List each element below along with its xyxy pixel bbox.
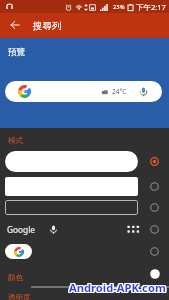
staticText: Android-APK.com [69,281,166,296]
staticText: Android-APK.com [68,281,165,296]
button[interactable]: Colour slider [25,266,169,292]
button[interactable] [0,239,169,263]
staticText: Android-APK.com [70,279,167,294]
button[interactable] [0,195,169,219]
staticText: 透明度 [8,293,31,300]
staticText: Android-APK.com [68,280,165,295]
button[interactable] [0,174,169,198]
button[interactable]: Google search [5,81,162,102]
staticText: 24°C [112,87,127,96]
staticText: Android-APK.com [68,279,165,294]
staticText: 顏色 [8,273,23,282]
staticText: 搜尋列 [33,20,62,32]
staticText: Google [7,224,36,235]
button[interactable] [0,149,169,173]
staticText: 預覽 [8,47,25,58]
staticText: 下午2:17 [136,2,166,12]
staticText: Android-APK.com [70,280,167,295]
button[interactable]: Google [0,217,169,241]
staticText: 23% [113,3,125,11]
staticText: Android-APK.com [70,281,167,296]
staticText: Android-APK.com [69,279,166,294]
staticText: 模式 [8,136,23,145]
button[interactable]: Back [4,14,25,35]
staticText: Android-APK.com [69,280,166,295]
